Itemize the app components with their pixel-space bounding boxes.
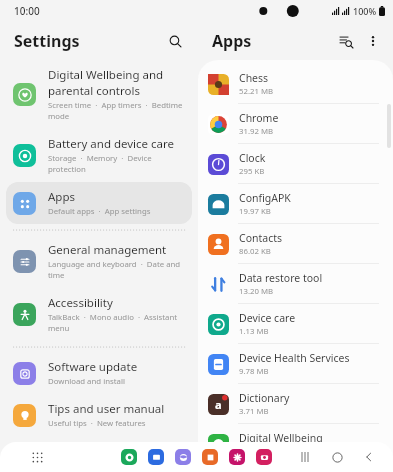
button[interactable]: Data restore tool bbox=[198, 264, 393, 303]
staticText: 3.71 MB bbox=[239, 406, 269, 417]
staticText: 295 KB bbox=[239, 166, 265, 177]
staticText: 9.78 MB bbox=[239, 366, 269, 377]
button[interactable]: Digital Wellbeing and parental controls bbox=[6, 60, 192, 129]
staticText: 52.21 MB bbox=[239, 86, 274, 97]
button[interactable]: Back bbox=[359, 447, 379, 467]
staticText: Contacts bbox=[239, 231, 283, 245]
staticText: Default apps · App settings bbox=[48, 206, 151, 217]
button[interactable]: Gallery bbox=[229, 449, 245, 465]
staticText: 31.92 MB bbox=[239, 126, 274, 137]
staticText: Device Health Services bbox=[239, 351, 350, 365]
button[interactable]: Digital Wellbeing bbox=[198, 424, 393, 463]
button[interactable]: All apps bbox=[26, 446, 48, 468]
staticText: Download and install bbox=[48, 376, 125, 387]
button[interactable]: Software update bbox=[6, 352, 192, 394]
staticText: Apps bbox=[48, 189, 76, 205]
button[interactable]: Clock bbox=[198, 144, 393, 183]
button[interactable]: Search bbox=[162, 28, 188, 54]
button[interactable]: General management bbox=[6, 235, 192, 288]
button[interactable]: Device care bbox=[198, 304, 393, 343]
staticText: ConfigAPK bbox=[239, 191, 291, 205]
staticText: TalkBack · Mono audio · Assistant menu bbox=[48, 312, 185, 334]
button[interactable]: Accessibility bbox=[6, 288, 192, 341]
staticText: Dictionary bbox=[239, 391, 290, 405]
staticText: Digital Wellbeing bbox=[239, 431, 323, 445]
button[interactable]: More options bbox=[361, 29, 385, 53]
staticText: Screen time · App timers · Bedtime mode bbox=[48, 100, 185, 122]
button[interactable]: Camera bbox=[256, 449, 272, 465]
staticText: Data restore tool bbox=[239, 271, 323, 285]
button[interactable]: Sort and search bbox=[333, 28, 359, 54]
staticText: Tips and user manual bbox=[48, 401, 165, 417]
staticText: 10:00 bbox=[14, 4, 40, 18]
staticText: Clock bbox=[239, 151, 266, 165]
button[interactable]: Apps bbox=[6, 182, 192, 224]
staticText: 19.97 KB bbox=[239, 206, 271, 217]
button[interactable]: Home bbox=[327, 447, 347, 467]
button[interactable]: Chess bbox=[198, 64, 393, 103]
staticText: Apps bbox=[212, 30, 333, 52]
staticText: 13.20 MB bbox=[239, 286, 274, 297]
staticText: Status · Legal information · Phone name bbox=[48, 460, 185, 465]
staticText: Language and keyboard · Date and time bbox=[48, 259, 185, 281]
button[interactable]: Battery and device care bbox=[6, 129, 192, 182]
staticText: Settings bbox=[14, 30, 162, 52]
staticText: 100% bbox=[353, 5, 377, 17]
button[interactable]: Contacts bbox=[198, 224, 393, 263]
button[interactable]: a bbox=[198, 384, 393, 423]
staticText: Chess bbox=[239, 71, 269, 85]
staticText: 1.79 MB bbox=[239, 446, 269, 457]
button[interactable]: About phone bbox=[6, 436, 192, 472]
staticText: Battery and device care bbox=[48, 136, 175, 152]
staticText: Useful tips · New features bbox=[48, 418, 146, 429]
button[interactable]: Phone bbox=[121, 449, 137, 465]
button[interactable]: Internet bbox=[175, 449, 191, 465]
button[interactable]: Chrome bbox=[198, 104, 393, 143]
staticText: Accessibility bbox=[48, 295, 113, 311]
staticText: Digital Wellbeing and parental controls bbox=[48, 67, 185, 99]
staticText: General management bbox=[48, 242, 167, 258]
staticText: 1.13 MB bbox=[239, 326, 269, 337]
staticText: Storage · Memory · Device protection bbox=[48, 153, 185, 175]
button[interactable]: Tips and user manual bbox=[6, 394, 192, 436]
button[interactable]: ConfigAPK bbox=[198, 184, 393, 223]
button[interactable]: Recents bbox=[295, 447, 315, 467]
staticText: 86.02 KB bbox=[239, 246, 271, 257]
staticText: Device care bbox=[239, 311, 296, 325]
staticText: Software update bbox=[48, 359, 138, 375]
staticText: a bbox=[215, 397, 222, 412]
button[interactable]: Messages bbox=[148, 449, 164, 465]
staticText: Chrome bbox=[239, 111, 279, 125]
button[interactable]: Notes bbox=[202, 449, 218, 465]
button[interactable]: Device Health Services bbox=[198, 344, 393, 383]
